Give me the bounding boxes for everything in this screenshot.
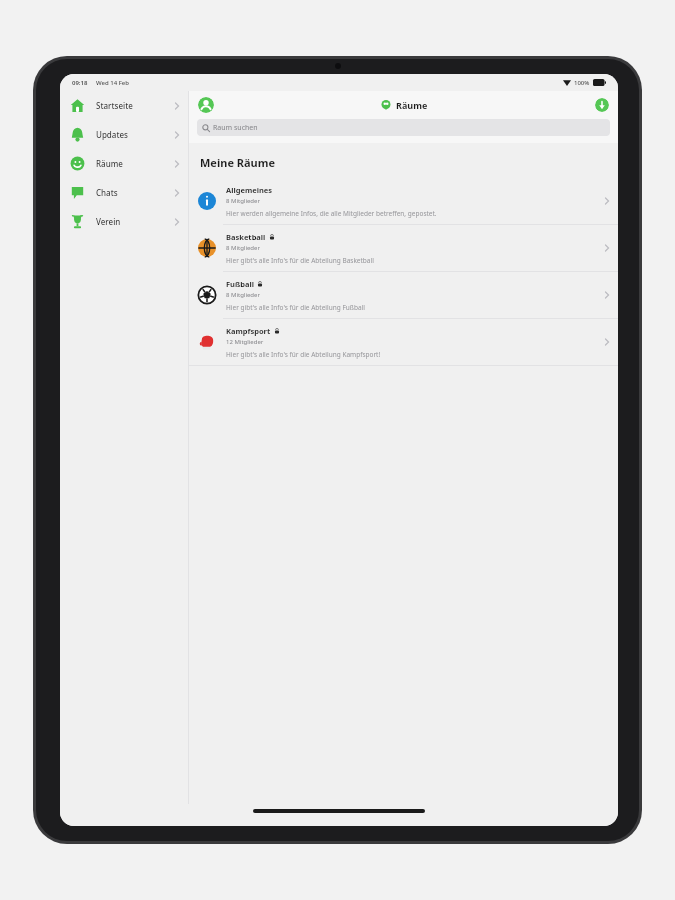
- button[interactable]: Basketball: [189, 225, 618, 271]
- staticText: 8 Mitglieder: [226, 291, 260, 299]
- staticText: Kampfsport: [226, 326, 271, 336]
- staticText: Allgemeines: [226, 185, 273, 195]
- button[interactable]: Raum suchen: [197, 119, 610, 136]
- button[interactable]: Profil: [198, 97, 214, 113]
- staticText: Räume: [396, 99, 428, 111]
- button[interactable]: Fußball: [189, 272, 618, 318]
- staticText: Fußball: [226, 279, 254, 289]
- staticText: 8 Mitglieder: [226, 197, 260, 205]
- button[interactable]: Allgemeines: [189, 178, 618, 224]
- button[interactable]: Räume: [60, 149, 188, 178]
- staticText: 09:18: [72, 79, 88, 87]
- button[interactable]: Hinzufügen: [595, 98, 609, 112]
- staticText: Wed 14 Feb: [96, 79, 130, 87]
- button[interactable]: Verein: [60, 207, 188, 236]
- staticText: Hier gibt's alle Info's für die Abteilun…: [226, 350, 381, 359]
- staticText: Hier gibt's alle Info's für die Abteilun…: [226, 256, 374, 265]
- staticText: Verein: [96, 216, 121, 227]
- staticText: Chats: [96, 187, 118, 198]
- staticText: Updates: [96, 129, 128, 140]
- button[interactable]: Startseite: [60, 91, 188, 120]
- staticText: Basketball: [226, 232, 266, 242]
- staticText: 100%: [574, 79, 590, 87]
- button[interactable]: Kampfsport: [189, 319, 618, 365]
- button[interactable]: Chats: [60, 178, 188, 207]
- staticText: Meine Räume: [200, 155, 276, 170]
- staticText: 8 Mitglieder: [226, 244, 260, 252]
- staticText: Hier gibt's alle Info's für die Abteilun…: [226, 303, 365, 312]
- staticText: 12 Mitglieder: [226, 338, 264, 346]
- staticText: Hier werden allgemeine Infos, die alle M…: [226, 209, 437, 218]
- staticText: Räume: [96, 158, 123, 169]
- staticText: Startseite: [96, 100, 133, 111]
- staticText: Raum suchen: [213, 123, 258, 133]
- button[interactable]: Updates: [60, 120, 188, 149]
